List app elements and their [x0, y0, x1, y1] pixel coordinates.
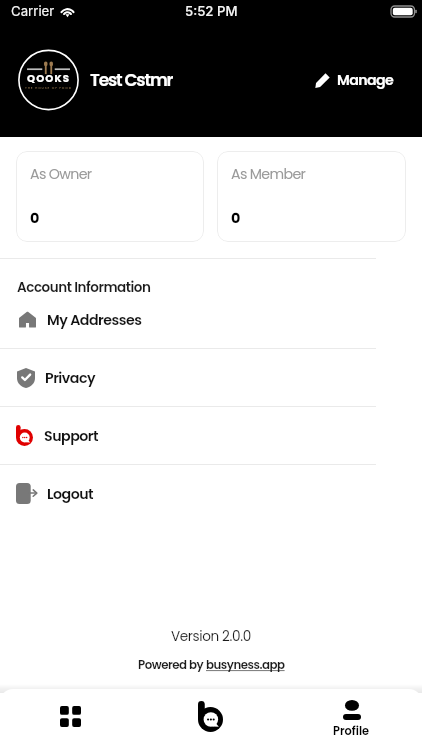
staticText: As Member — [231, 164, 306, 184]
staticText: My Addresses — [47, 310, 142, 330]
button[interactable]: Busyness — [140, 689, 281, 750]
staticText: 0 — [30, 208, 40, 228]
button[interactable]: Manage — [305, 62, 422, 98]
staticText: As Owner — [30, 164, 92, 184]
button[interactable]: busyness.app — [206, 657, 285, 674]
staticText: Logout — [47, 484, 94, 504]
staticText: Support — [44, 426, 99, 446]
button[interactable]: My Addresses — [0, 291, 422, 348]
button[interactable]: Profile — [281, 689, 422, 750]
staticText: Test Cstmr — [90, 68, 173, 92]
button[interactable]: Support — [0, 407, 422, 464]
staticText: 5:52 PM — [185, 3, 238, 19]
staticText: Profile — [333, 723, 370, 739]
button[interactable]: Privacy — [0, 349, 422, 406]
staticText: Account Information — [17, 278, 151, 297]
button[interactable]: As Owner — [16, 151, 204, 242]
staticText: Powered by — [138, 657, 206, 674]
staticText: THE HOUSE OF FOOD — [25, 86, 72, 91]
staticText: Version 2.0.0 — [171, 627, 251, 646]
staticText: Manage — [337, 70, 394, 90]
staticText: Carrier — [11, 3, 55, 19]
staticText: Privacy — [45, 368, 96, 388]
button[interactable]: Dashboard — [0, 689, 140, 750]
staticText: 0 — [231, 208, 241, 228]
button[interactable]: As Member — [217, 151, 406, 242]
staticText: QOOKS — [27, 71, 71, 85]
button[interactable]: Logout — [0, 465, 422, 522]
